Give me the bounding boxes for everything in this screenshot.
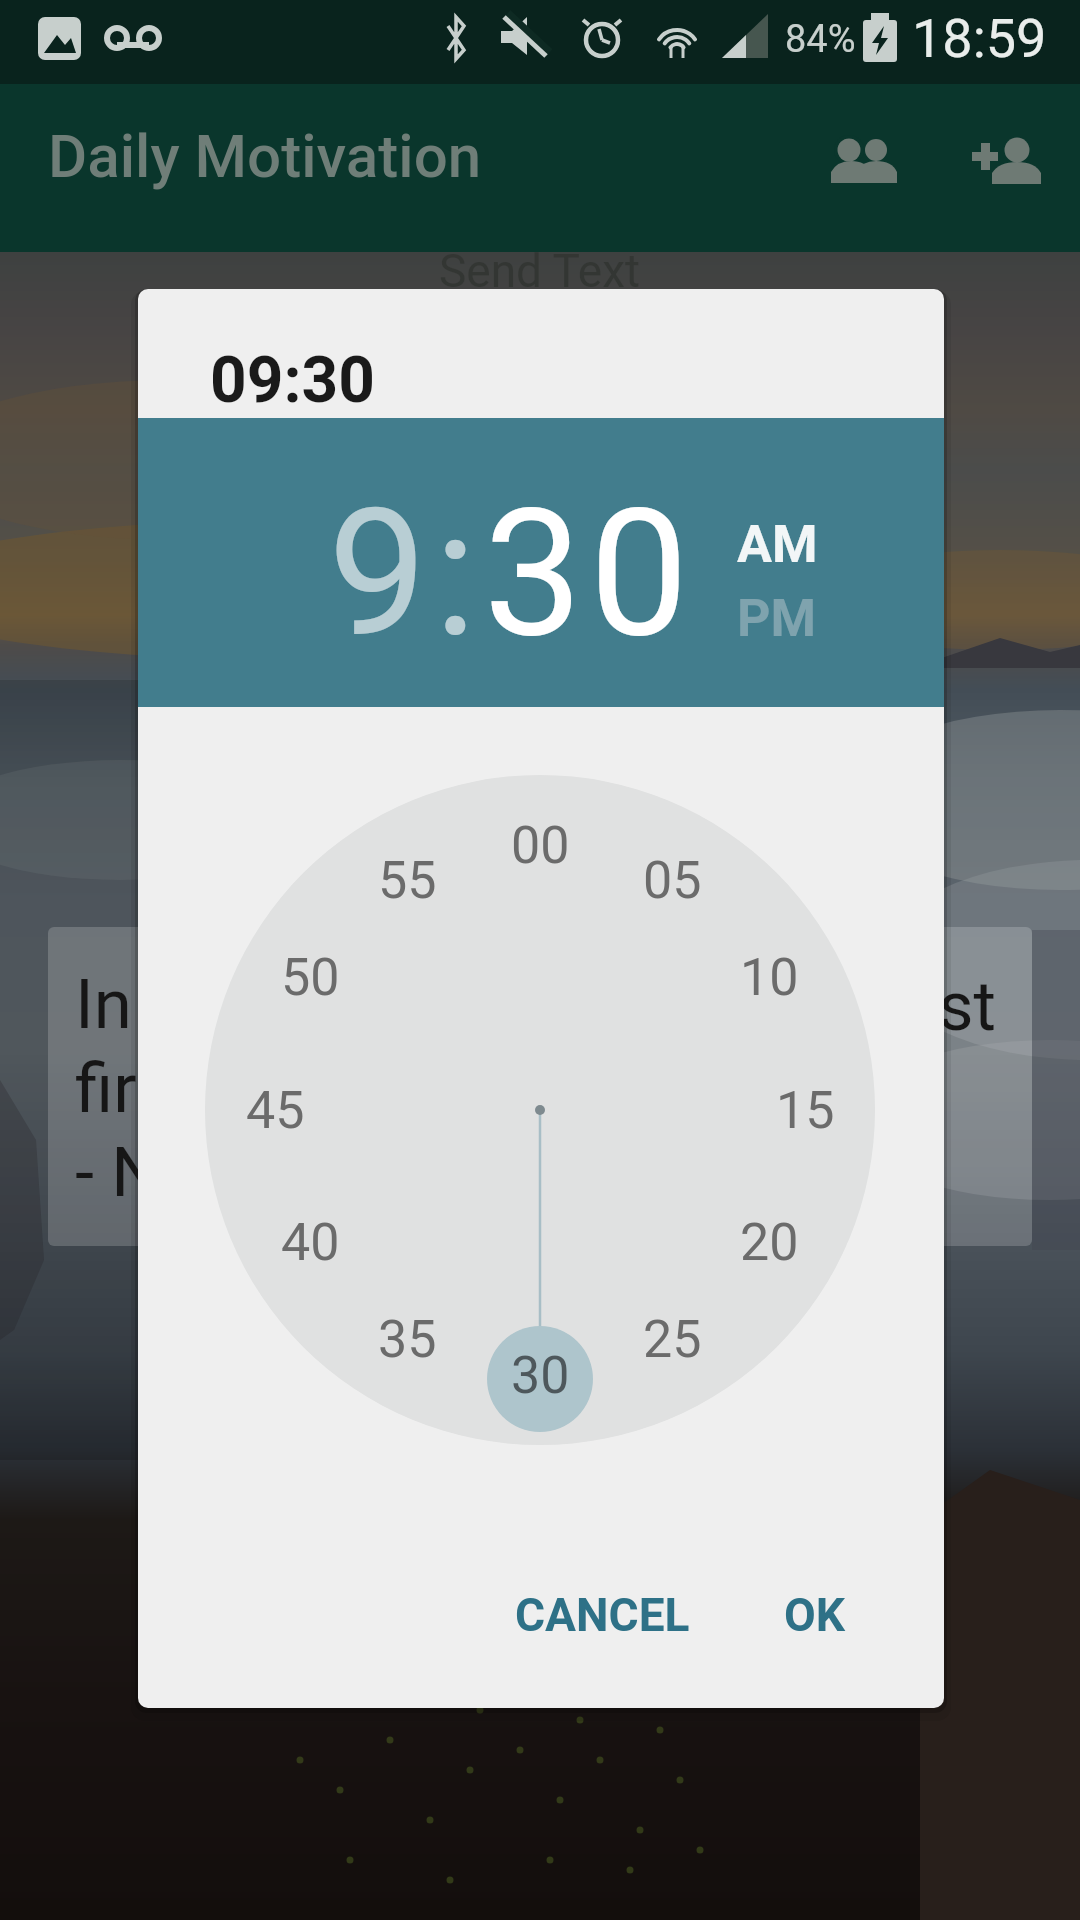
staticText: 84% [785, 17, 856, 62]
button[interactable]: Send Text [313, 225, 767, 317]
button[interactable] [952, 118, 1060, 202]
staticText: 18:59 [912, 7, 1047, 70]
staticText: fir [75, 1048, 137, 1129]
staticText: 30 [511, 1345, 570, 1406]
button[interactable]: 10 [724, 937, 814, 1017]
button[interactable]: 55 [362, 840, 452, 920]
staticText: 25 [643, 1309, 702, 1370]
button[interactable]: PM [717, 581, 837, 655]
staticText: 05 [643, 850, 702, 911]
button[interactable]: 40 [265, 1202, 355, 1282]
button[interactable]: 25 [627, 1299, 717, 1379]
staticText: 40 [281, 1212, 340, 1273]
button[interactable]: 05 [627, 840, 717, 920]
staticText: 20 [740, 1212, 799, 1273]
staticText: In [75, 964, 132, 1045]
staticText: CANCEL [515, 1588, 690, 1642]
staticText: 09:30 [210, 343, 375, 418]
button[interactable]: CANCEL [482, 1560, 722, 1670]
staticText: 10 [740, 947, 799, 1008]
staticText: 45 [246, 1080, 305, 1141]
staticText: Send Text [439, 244, 641, 298]
button[interactable]: 30 [495, 1335, 585, 1415]
button[interactable]: 20 [724, 1202, 814, 1282]
staticText: 50 [281, 947, 340, 1008]
staticText: 35 [378, 1309, 437, 1370]
staticText: 00 [511, 815, 570, 876]
staticText: 15 [776, 1080, 835, 1141]
button[interactable]: 50 [265, 937, 355, 1017]
staticText: st [938, 966, 997, 1047]
button[interactable]: OK [744, 1560, 884, 1670]
staticText: OK [784, 1588, 845, 1642]
staticText: PM [737, 588, 817, 649]
button[interactable]: 15 [760, 1070, 850, 1150]
staticText: 9:30 [328, 471, 696, 677]
staticText: AM [737, 514, 818, 575]
button[interactable]: 00 [495, 805, 585, 885]
staticText: - N [75, 1132, 161, 1213]
staticText: 55 [378, 850, 437, 911]
button[interactable]: 35 [362, 1299, 452, 1379]
button[interactable]: AM [717, 507, 837, 581]
staticText: Daily Motivation [48, 121, 482, 191]
button[interactable]: 45 [230, 1070, 320, 1150]
button[interactable] [810, 118, 918, 202]
